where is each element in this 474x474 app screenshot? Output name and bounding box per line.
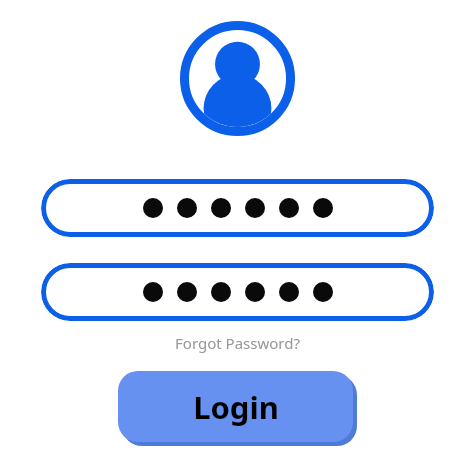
button[interactable]: Password field (41, 263, 434, 321)
button[interactable]: Username field (41, 179, 434, 237)
staticText: Login (193, 386, 279, 428)
other: Profile avatar (180, 21, 295, 136)
button[interactable]: Login (118, 371, 353, 442)
staticText: Forgot Password? (175, 333, 300, 353)
button[interactable]: Forgot Password? (175, 333, 300, 353)
